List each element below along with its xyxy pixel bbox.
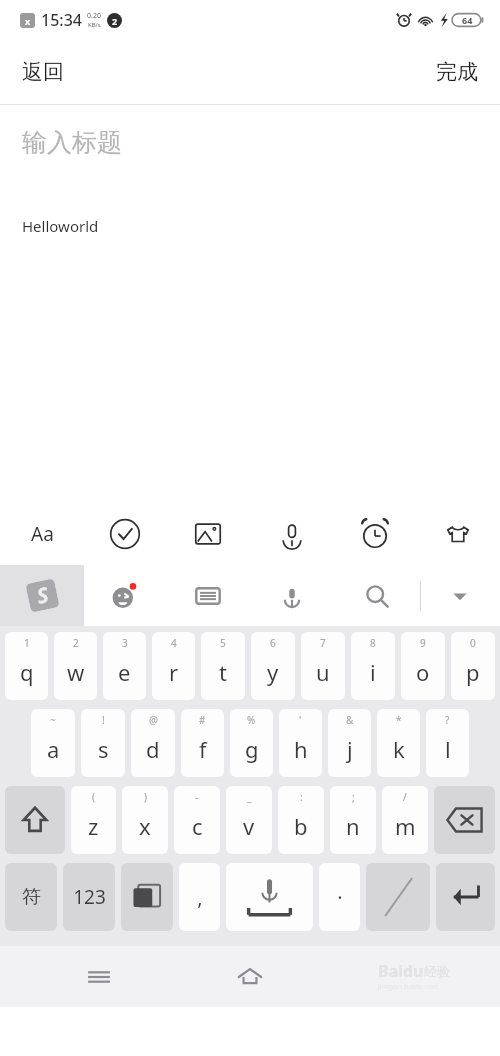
button[interactable]: 1	[5, 632, 48, 700]
staticText: S	[34, 580, 52, 611]
button[interactable]: '	[279, 709, 322, 777]
button[interactable]: Reminder	[351, 510, 399, 558]
button[interactable]: Recent apps	[74, 952, 124, 1002]
staticText: f	[199, 734, 207, 764]
button[interactable]: ,	[179, 863, 220, 931]
staticText: 6	[270, 636, 276, 650]
button[interactable]: *	[377, 709, 420, 777]
staticText: 输入标题	[22, 127, 122, 158]
staticText: q	[20, 657, 34, 687]
staticText: 1	[24, 636, 30, 650]
button[interactable]: &	[328, 709, 371, 777]
button[interactable]: 7	[301, 632, 345, 700]
staticText: &	[346, 713, 354, 727]
button[interactable]: 完成	[414, 47, 500, 97]
button[interactable]: 3	[103, 632, 146, 700]
button[interactable]: 123	[63, 863, 115, 931]
button[interactable]: 9	[401, 632, 445, 700]
button[interactable]: 2	[54, 632, 97, 700]
staticText: a	[47, 734, 60, 764]
button[interactable]: 6	[251, 632, 295, 700]
button[interactable]: Theme	[434, 510, 482, 558]
button[interactable]: Space	[226, 863, 313, 931]
staticText: m	[395, 811, 416, 841]
staticText: u	[316, 657, 330, 687]
button[interactable]: #	[181, 709, 224, 777]
staticText: n	[346, 811, 360, 841]
button[interactable]: Switch language	[121, 863, 173, 931]
button[interactable]: Home	[225, 952, 275, 1002]
staticText: 符	[22, 885, 41, 909]
button[interactable]: !	[81, 709, 125, 777]
staticText: KB/s	[88, 21, 101, 29]
staticText: r	[169, 657, 179, 687]
staticText: d	[146, 734, 160, 764]
staticText: w	[67, 657, 85, 687]
staticText: 3	[122, 636, 128, 650]
staticText: 0	[470, 636, 476, 650]
staticText: 7	[320, 636, 326, 650]
staticText: 64	[462, 14, 473, 26]
button[interactable]: Voice input	[268, 572, 316, 620]
button[interactable]: Checklist	[101, 510, 149, 558]
button[interactable]: Sogou input	[0, 565, 84, 626]
staticText: x	[139, 811, 151, 841]
button[interactable]: :	[278, 786, 324, 854]
staticText: k	[393, 734, 405, 764]
button[interactable]: Keyboard layout	[184, 572, 232, 620]
button[interactable]: Voice input	[268, 510, 316, 558]
staticText: 123	[73, 884, 106, 910]
staticText: 完成	[436, 59, 478, 85]
staticText: *	[396, 713, 402, 727]
staticText: 返回	[22, 59, 64, 85]
button[interactable]: ~	[31, 709, 75, 777]
staticText: p	[466, 657, 480, 687]
staticText: e	[118, 657, 131, 687]
button[interactable]: 5	[201, 632, 245, 700]
button[interactable]: )	[122, 786, 168, 854]
button[interactable]: 符	[5, 863, 57, 931]
button[interactable]: (	[71, 786, 116, 854]
button[interactable]: 0	[451, 632, 495, 700]
staticText: (	[92, 790, 95, 804]
button[interactable]: Insert image	[184, 510, 232, 558]
staticText: 经验	[424, 963, 450, 979]
button[interactable]: 4	[152, 632, 195, 700]
staticText: 2	[112, 15, 118, 27]
button[interactable]: %	[230, 709, 273, 777]
staticText: b	[294, 811, 308, 841]
staticText: ?	[445, 713, 450, 727]
staticText: '	[299, 713, 302, 727]
button[interactable]: Emoji	[100, 572, 148, 620]
button[interactable]: Shift	[5, 786, 65, 854]
button[interactable]: @	[131, 709, 175, 777]
button[interactable]: 返回	[0, 47, 86, 97]
staticText: j	[347, 734, 353, 764]
staticText: ~	[50, 713, 56, 727]
button[interactable]: Search	[353, 572, 401, 620]
button[interactable]: _	[226, 786, 272, 854]
staticText: /	[403, 790, 407, 804]
button[interactable]: ?	[426, 709, 469, 777]
button[interactable]: Text format	[18, 510, 66, 558]
button[interactable]: 8	[351, 632, 395, 700]
button[interactable]: /	[382, 786, 428, 854]
button[interactable]: ;	[330, 786, 376, 854]
staticText: 9	[420, 636, 426, 650]
staticText: h	[294, 734, 308, 764]
button[interactable]: Hide keyboard	[436, 572, 484, 620]
staticText: 2	[73, 636, 79, 650]
staticText: c	[192, 811, 203, 841]
button[interactable]: Enter	[436, 863, 495, 931]
staticText: z	[88, 811, 99, 841]
button[interactable]: -	[174, 786, 220, 854]
staticText: l	[445, 734, 451, 764]
staticText: #	[199, 713, 206, 727]
button[interactable]: Backspace	[434, 786, 495, 854]
button[interactable]: ·	[319, 863, 360, 931]
staticText: Helloworld	[22, 216, 99, 236]
staticText: Aa	[31, 521, 54, 547]
button[interactable]: Chinese English toggle	[366, 863, 430, 931]
staticText: y	[267, 657, 279, 687]
staticText: )	[144, 790, 147, 804]
